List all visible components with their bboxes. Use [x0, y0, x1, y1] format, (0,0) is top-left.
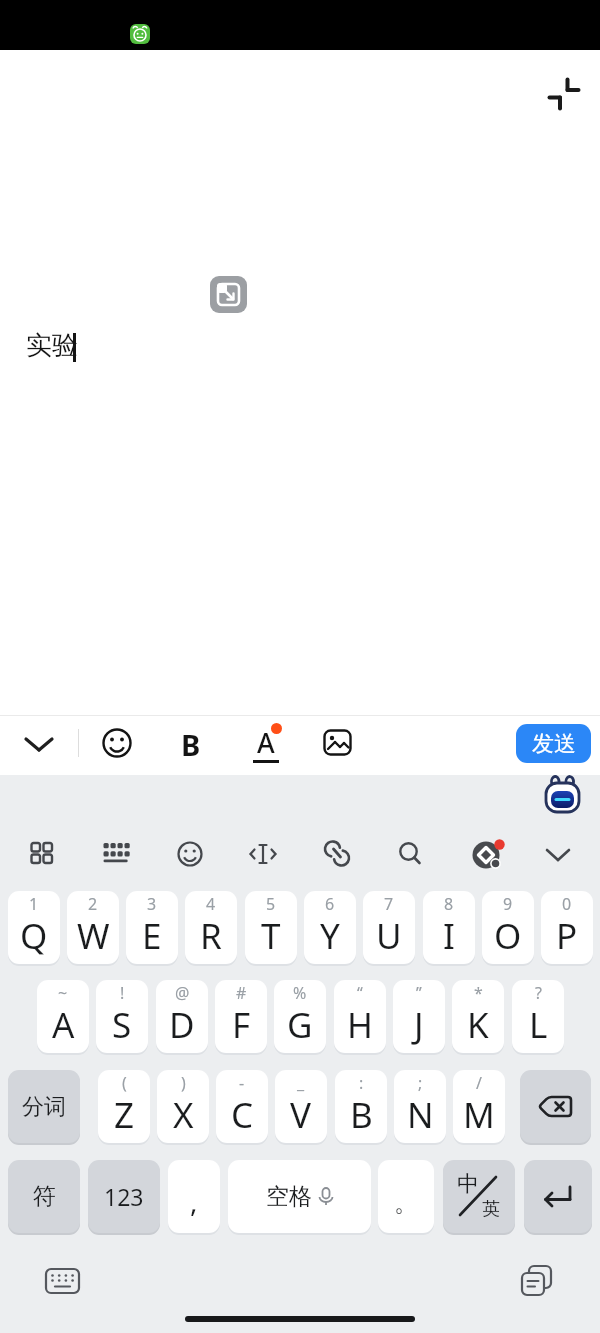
button[interactable]: 空格	[228, 1160, 371, 1233]
button[interactable]: 123	[88, 1160, 160, 1233]
staticText: 4	[206, 893, 216, 915]
button[interactable]: A	[248, 722, 284, 766]
staticText: !	[120, 982, 125, 1004]
button[interactable]: 2	[67, 891, 119, 964]
button[interactable]: /	[453, 1070, 505, 1143]
button[interactable]	[176, 840, 204, 868]
staticText: T	[261, 912, 281, 960]
button[interactable]: “	[334, 980, 386, 1053]
staticText: K	[467, 1001, 489, 1049]
button[interactable]: (	[98, 1070, 150, 1143]
staticText: S	[112, 1001, 132, 1049]
staticText: X	[173, 1091, 194, 1139]
staticText: _	[297, 1072, 305, 1094]
button[interactable]: _	[275, 1070, 327, 1143]
staticText: 实验	[26, 329, 78, 362]
staticText: 9	[503, 893, 513, 915]
button[interactable]: )	[157, 1070, 209, 1143]
staticText: ?	[535, 982, 542, 1004]
button[interactable]: %	[274, 980, 326, 1053]
button[interactable]: 中	[443, 1160, 515, 1233]
button[interactable]: 6	[304, 891, 356, 964]
button[interactable]: :	[335, 1070, 387, 1143]
button[interactable]	[524, 1160, 592, 1233]
staticText: “	[357, 982, 363, 1004]
staticText: %	[293, 982, 307, 1004]
staticText: J	[414, 1001, 424, 1049]
button[interactable]: 4	[185, 891, 237, 964]
staticText: 空格	[266, 1182, 312, 1211]
staticText: 1	[29, 893, 39, 915]
button[interactable]	[27, 840, 55, 868]
button[interactable]	[546, 76, 582, 112]
staticText: B	[350, 1091, 373, 1139]
staticText: Q	[20, 912, 48, 960]
button[interactable]	[470, 837, 504, 871]
button[interactable]	[520, 1070, 591, 1143]
staticText: M	[463, 1091, 495, 1139]
staticText: Y	[320, 912, 340, 960]
staticText: E	[142, 912, 162, 960]
staticText: P	[556, 912, 578, 960]
button[interactable]	[518, 1262, 556, 1300]
button[interactable]: ”	[393, 980, 445, 1053]
staticText: #	[236, 982, 247, 1004]
staticText: H	[347, 1001, 373, 1049]
button[interactable]: 发送	[516, 724, 591, 763]
staticText: ,	[190, 1182, 198, 1220]
button[interactable]: ~	[37, 980, 89, 1053]
button[interactable]: 5	[245, 891, 297, 964]
staticText: Z	[114, 1091, 135, 1139]
button[interactable]: 3	[126, 891, 178, 964]
button[interactable]	[101, 727, 133, 759]
button[interactable]: 8	[423, 891, 475, 964]
staticText: I	[443, 912, 455, 960]
button[interactable]	[396, 840, 424, 868]
staticText: F	[232, 1001, 251, 1049]
button[interactable]: 9	[482, 891, 534, 964]
staticText: B	[181, 725, 201, 761]
button[interactable]: 0	[541, 891, 593, 964]
button[interactable]	[44, 1264, 82, 1298]
button[interactable]: B	[174, 725, 208, 761]
button[interactable]	[18, 728, 60, 758]
button[interactable]: 分词	[8, 1070, 80, 1143]
staticText: ~	[58, 982, 68, 1004]
button[interactable]	[544, 840, 572, 868]
button[interactable]	[323, 840, 351, 868]
staticText: @	[175, 982, 190, 1004]
staticText: 符	[33, 1182, 56, 1211]
button[interactable]: ;	[394, 1070, 446, 1143]
button[interactable]	[543, 776, 583, 814]
staticText: D	[169, 1001, 195, 1049]
button[interactable]: 1	[8, 891, 60, 964]
button[interactable]	[249, 840, 277, 868]
staticText: N	[407, 1091, 434, 1139]
button[interactable]: 。	[378, 1160, 434, 1233]
button[interactable]: *	[452, 980, 504, 1053]
button[interactable]: ?	[512, 980, 564, 1053]
staticText: -	[239, 1072, 245, 1094]
staticText: U	[376, 912, 402, 960]
button[interactable]: #	[215, 980, 267, 1053]
staticText: L	[529, 1001, 548, 1049]
button[interactable]: !	[96, 980, 148, 1053]
button[interactable]	[102, 840, 130, 868]
staticText: 7	[384, 893, 394, 915]
button[interactable]: -	[216, 1070, 268, 1143]
staticText: ”	[416, 982, 422, 1004]
staticText: 发送	[532, 730, 576, 758]
staticText: ;	[418, 1072, 423, 1094]
staticText: C	[231, 1091, 254, 1139]
button[interactable]	[323, 729, 353, 757]
staticText: 123	[104, 1181, 144, 1212]
staticText: (	[122, 1072, 127, 1094]
staticText: 中	[457, 1170, 479, 1198]
staticText: A	[257, 724, 275, 761]
button[interactable]: 7	[363, 891, 415, 964]
button[interactable]: 符	[8, 1160, 80, 1233]
staticText: R	[200, 912, 222, 960]
button[interactable]: @	[156, 980, 208, 1053]
button[interactable]: ,	[168, 1160, 220, 1233]
button[interactable]	[210, 276, 247, 313]
